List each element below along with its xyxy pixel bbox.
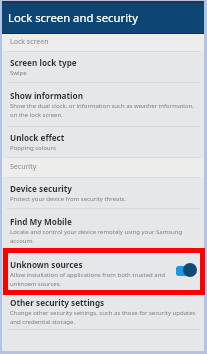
staticText: Popping colours	[10, 144, 56, 152]
staticText: Locate and control your device remotely …	[10, 228, 183, 244]
staticText: Lock screen and security	[8, 10, 138, 25]
staticText: Unknown sources	[10, 259, 83, 270]
button[interactable]: Unknown sources	[2, 253, 204, 294]
staticText: Protect your device from security threat…	[10, 195, 127, 203]
staticText: Show the dual clock, or information such…	[10, 102, 194, 118]
button[interactable]: Screen lock type	[2, 52, 204, 82]
button[interactable]: Show information	[2, 83, 204, 126]
staticText: Unlock effect	[10, 132, 65, 143]
button[interactable]: Unlock effect	[2, 127, 204, 157]
button[interactable]: Other security settings	[2, 295, 204, 329]
staticText: Allow installation of applications from …	[10, 271, 166, 287]
staticText: Lock screen	[10, 37, 49, 47]
button[interactable]: Find My Mobile	[2, 209, 204, 252]
button[interactable]: Device security	[2, 178, 204, 208]
staticText: Other security settings	[10, 297, 105, 308]
staticText: Security	[10, 162, 37, 172]
staticText: Swipe	[10, 69, 27, 77]
staticText: Change other security settings, such as …	[10, 309, 196, 325]
staticText: Show information	[10, 90, 83, 101]
staticText: Screen lock type	[10, 57, 77, 68]
staticText: Device security	[10, 183, 72, 194]
button[interactable]: Unknown sources toggle	[169, 259, 199, 281]
staticText: Find My Mobile	[10, 216, 72, 227]
